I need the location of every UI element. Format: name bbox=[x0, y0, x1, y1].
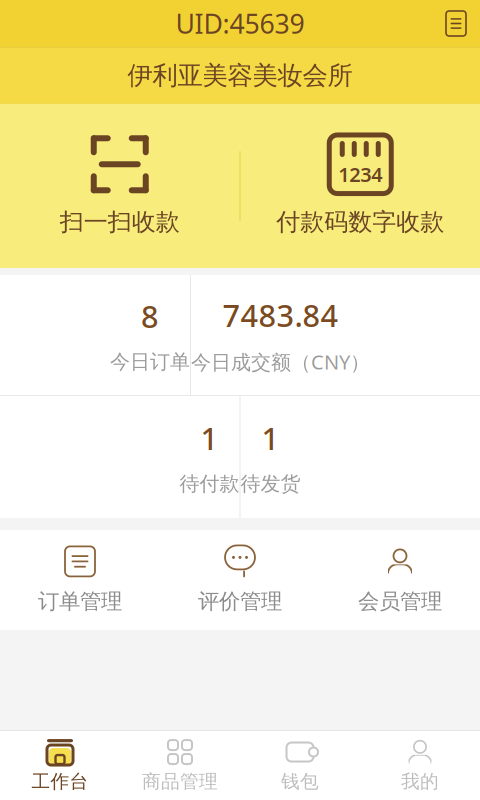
staticText: 待发货 bbox=[240, 472, 300, 496]
button[interactable]: 扫一扫收款 bbox=[0, 104, 239, 268]
staticText: 商品管理 bbox=[142, 770, 218, 793]
staticText: 钱包 bbox=[281, 770, 319, 793]
staticText: 扫一扫收款 bbox=[60, 207, 180, 237]
staticText: 付款码数字收款 bbox=[276, 207, 444, 237]
staticText: 今日成交额（CNY） bbox=[191, 349, 370, 375]
staticText: 我的 bbox=[401, 770, 439, 793]
staticText: 1234 bbox=[338, 161, 382, 188]
staticText: 今日订单 bbox=[110, 350, 190, 374]
button[interactable]: Documents bbox=[432, 3, 480, 44]
staticText: 8 bbox=[141, 296, 159, 337]
staticText: 伊利亚美容美妆会所 bbox=[127, 60, 352, 91]
button[interactable]: 会员管理 bbox=[320, 530, 480, 630]
staticText: 会员管理 bbox=[358, 588, 442, 615]
button[interactable]: 8 bbox=[110, 275, 190, 395]
button[interactable]: 7483.84 bbox=[191, 275, 370, 395]
button[interactable]: 商品管理 bbox=[120, 731, 240, 800]
button[interactable]: 1 bbox=[179, 396, 239, 518]
staticText: 7483.84 bbox=[222, 295, 338, 336]
staticText: 工作台 bbox=[31, 770, 88, 793]
button[interactable]: 1234 bbox=[240, 104, 480, 268]
button[interactable]: 订单管理 bbox=[0, 530, 160, 630]
button[interactable]: 我的 bbox=[360, 731, 480, 800]
button[interactable]: 钱包 bbox=[240, 731, 360, 800]
staticText: 评价管理 bbox=[198, 588, 282, 615]
button[interactable]: 工作台 bbox=[0, 731, 120, 800]
staticText: 1 bbox=[200, 418, 218, 459]
staticText: 1 bbox=[261, 418, 279, 459]
staticText: 订单管理 bbox=[38, 588, 122, 615]
button[interactable]: 评价管理 bbox=[160, 530, 320, 630]
staticText: UID:45639 bbox=[175, 6, 304, 41]
staticText: 待付款 bbox=[179, 472, 239, 496]
button[interactable]: 1 bbox=[240, 396, 300, 518]
